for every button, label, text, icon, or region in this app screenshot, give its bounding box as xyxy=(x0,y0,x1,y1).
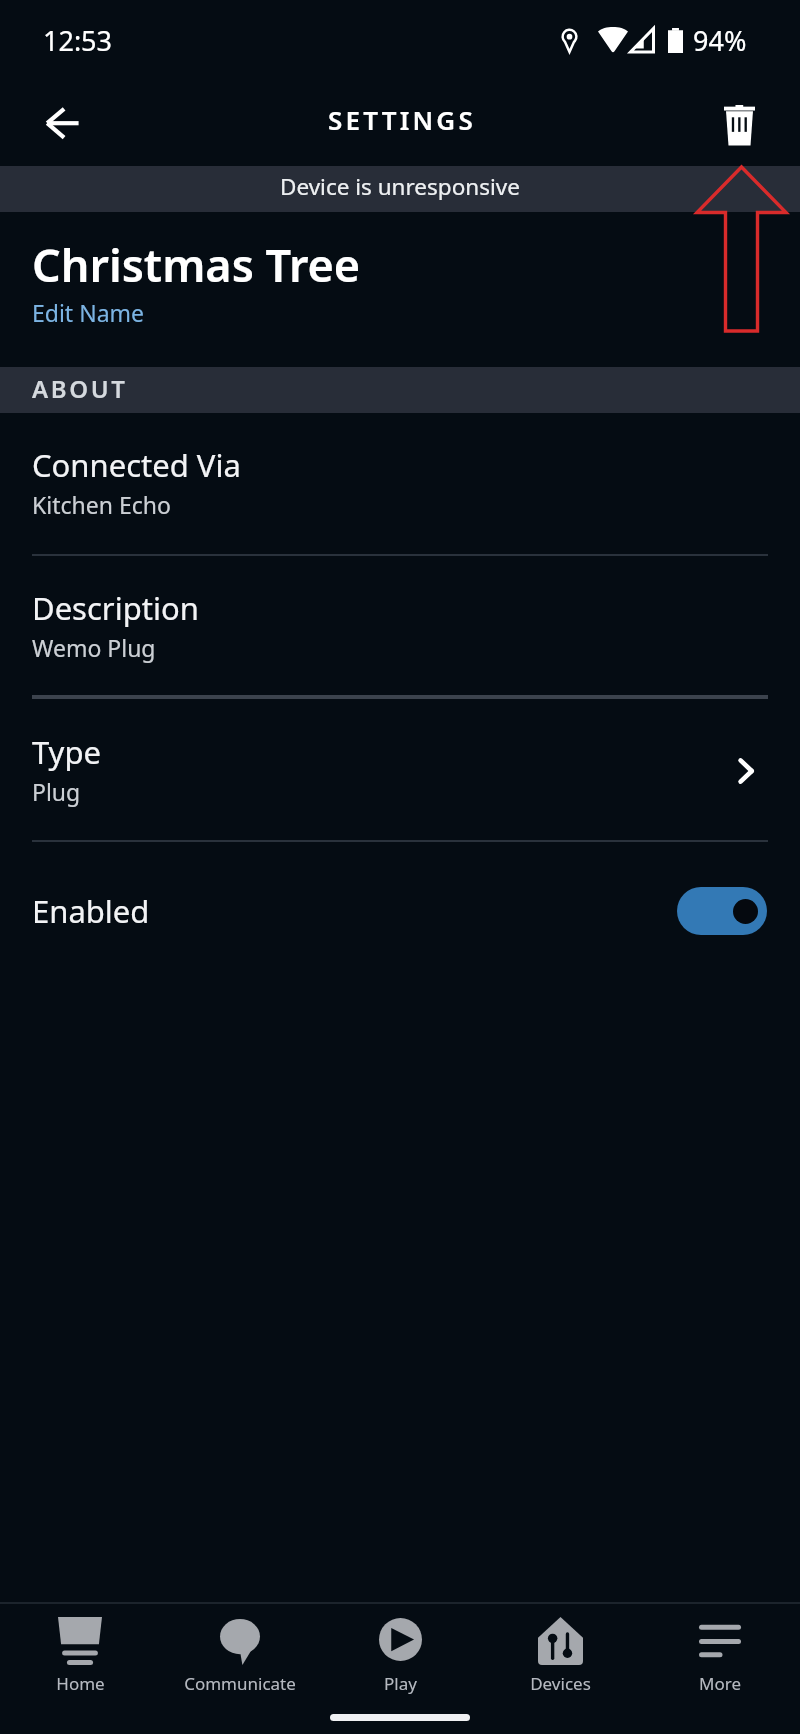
button[interactable]: Type xyxy=(0,723,800,828)
staticText: Play xyxy=(384,1672,417,1695)
staticText: Wemo Plug xyxy=(32,632,156,663)
staticText: Connected Via xyxy=(32,444,241,486)
staticText: Type xyxy=(32,731,101,773)
staticText: 12:53 xyxy=(43,22,113,59)
staticText: Plug xyxy=(32,776,81,807)
button[interactable]: Enabled xyxy=(0,876,800,946)
staticText: Kitchen Echo xyxy=(32,489,171,520)
button[interactable]: Devices xyxy=(480,1604,640,1704)
staticText: Edit Name xyxy=(32,297,145,328)
staticText: Christmas Tree xyxy=(32,234,361,295)
button[interactable]: Edit Name xyxy=(28,294,149,331)
staticText: More xyxy=(699,1672,741,1695)
button[interactable]: Communicate xyxy=(160,1604,320,1704)
staticText: SETTINGS xyxy=(328,102,476,137)
button[interactable]: Description xyxy=(0,579,800,684)
button[interactable]: Play xyxy=(320,1604,480,1704)
staticText: 94% xyxy=(693,22,747,59)
staticText: Communicate xyxy=(184,1672,296,1695)
button[interactable]: Home xyxy=(0,1604,160,1704)
staticText: Description xyxy=(32,587,199,629)
staticText: Enabled xyxy=(32,890,677,932)
button[interactable]: More xyxy=(640,1604,800,1704)
staticText: Device is unresponsive xyxy=(280,171,520,202)
button[interactable]: Back xyxy=(28,94,88,154)
button[interactable]: Delete xyxy=(710,96,768,154)
staticText: Home xyxy=(56,1672,105,1695)
button[interactable]: Connected Via xyxy=(0,436,800,541)
staticText: Devices xyxy=(530,1672,591,1695)
staticText: ABOUT xyxy=(32,372,128,405)
